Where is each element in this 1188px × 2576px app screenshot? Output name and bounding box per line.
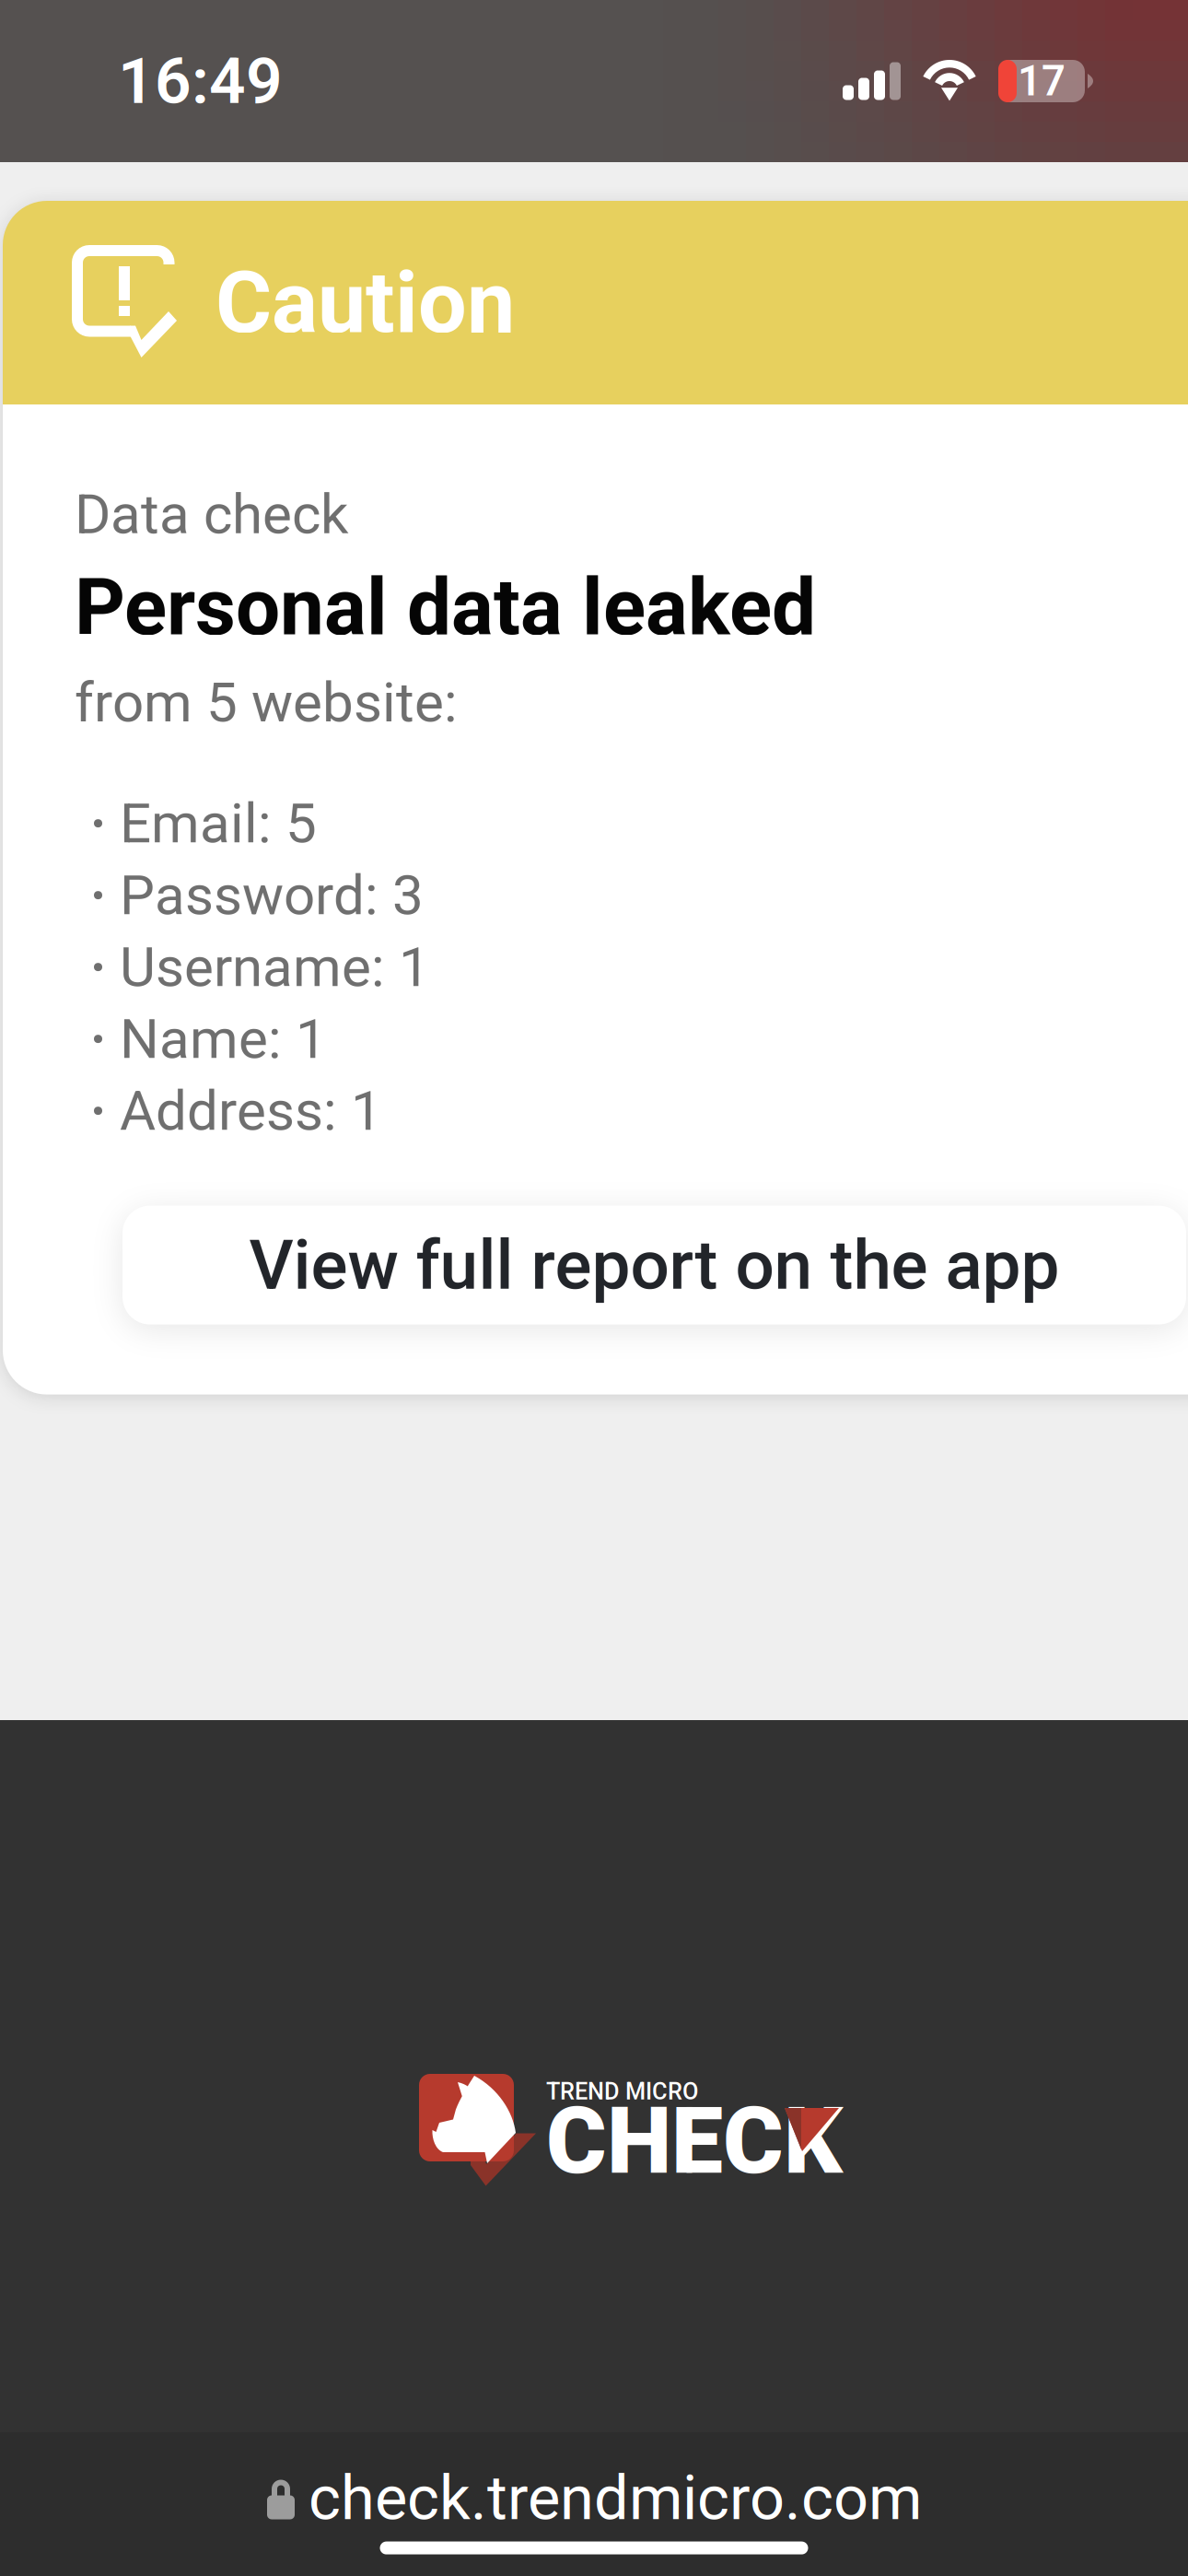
staticText: Name: 1 [120, 1007, 327, 1071]
staticText: Data check [75, 482, 348, 547]
staticText: 16:49 [118, 44, 283, 118]
staticText: Personal data leaked [75, 561, 816, 653]
staticText: Email: 5 [120, 791, 317, 856]
staticText: CHECK [546, 2087, 843, 2195]
staticText: TREND MICRO [546, 2078, 698, 2105]
staticText: Address: 1 [120, 1078, 382, 1143]
staticText: Caution [215, 252, 515, 353]
staticText: from 5 website: [75, 670, 458, 735]
button[interactable]: View full report on the app [122, 1206, 1186, 1324]
staticText: 17 [1018, 57, 1066, 105]
staticText: Password: 3 [120, 863, 424, 928]
staticText: Username: 1 [120, 935, 430, 999]
staticText: View full report on the app [249, 1225, 1060, 1305]
staticText: check.trendmicro.com [309, 2462, 922, 2534]
